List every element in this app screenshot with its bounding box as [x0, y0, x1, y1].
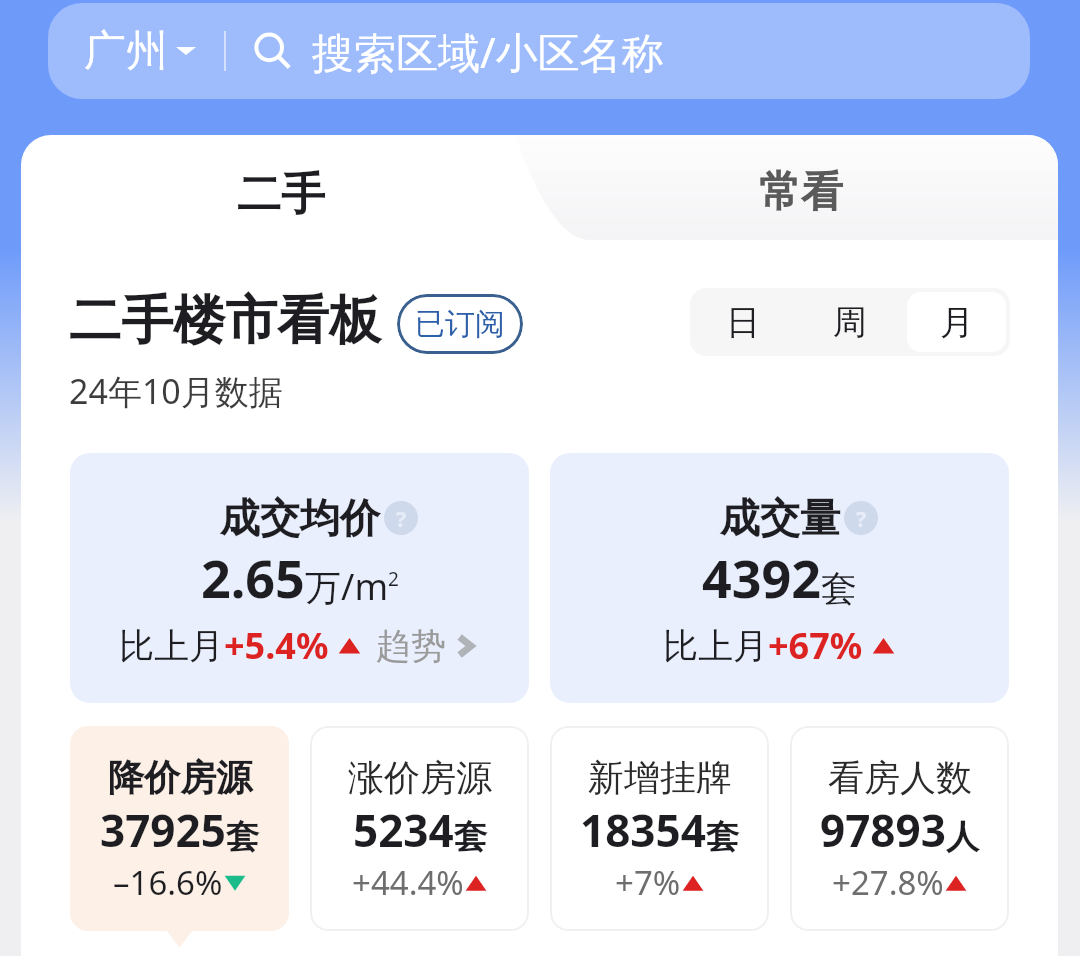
staticText: +7% [615, 860, 681, 905]
staticText: 18354 [580, 800, 706, 860]
button[interactable]: 说明 [844, 501, 878, 535]
staticText: 比上月 [663, 624, 768, 668]
staticText: 已订阅 [415, 305, 505, 343]
staticText: –16.6% [113, 860, 223, 905]
button[interactable]: 周 [800, 292, 899, 352]
staticText: 趋势 [376, 624, 446, 668]
staticText: +44.4% [352, 860, 464, 905]
staticText: 套 [226, 816, 259, 858]
staticText: 套 [821, 566, 857, 611]
staticText: 97893 [820, 800, 946, 860]
staticText: +67% [768, 621, 863, 670]
button[interactable]: 广州 [48, 3, 1030, 99]
staticText: 广州 [84, 25, 168, 78]
staticText: 比上月 [119, 624, 224, 668]
staticText: 4392 [702, 542, 821, 613]
staticText: 搜索区域/小区名称 [312, 23, 664, 80]
staticText: 月 [940, 301, 974, 344]
staticText: 万/m2 [305, 562, 399, 611]
staticText: 人 [946, 816, 979, 858]
staticText: +27.8% [832, 860, 944, 905]
staticText: 降价房源 [108, 755, 252, 800]
staticText: 二手 [237, 167, 325, 222]
button[interactable]: 新增挂牌 [550, 726, 769, 931]
button[interactable]: 已订阅 [415, 305, 505, 343]
button[interactable]: 说明 [384, 501, 418, 535]
staticText: 套 [706, 816, 739, 858]
staticText: +5.4% [224, 621, 329, 670]
staticText: 37925 [100, 800, 226, 860]
staticText: 看房人数 [828, 755, 972, 800]
button[interactable]: 成交量 [550, 453, 1009, 703]
button[interactable]: 看房人数 [790, 726, 1009, 931]
staticText: 常看 [759, 166, 843, 219]
staticText: 2.65 [201, 542, 305, 613]
staticText: ? [856, 504, 867, 533]
staticText: 成交量 [720, 493, 840, 543]
button[interactable] [21, 135, 513, 240]
staticText: 新增挂牌 [588, 755, 732, 800]
staticText: 成交均价 [220, 493, 380, 543]
staticText: 周 [833, 301, 867, 344]
button[interactable]: 月 [907, 292, 1006, 352]
button[interactable] [558, 135, 1058, 240]
staticText: 套 [454, 816, 487, 858]
other: 趋势 [450, 631, 480, 661]
staticText: 二手楼市看板 [69, 288, 381, 354]
button[interactable]: 涨价房源 [310, 726, 529, 931]
button[interactable]: 降价房源 [70, 726, 289, 931]
staticText: 5234 [353, 800, 454, 860]
button[interactable]: 日 [694, 292, 792, 352]
staticText: ? [396, 504, 407, 533]
staticText: 24年10月数据 [69, 368, 283, 414]
staticText: 日 [726, 301, 760, 344]
staticText: 涨价房源 [348, 755, 492, 800]
button[interactable]: 成交均价 [70, 453, 529, 703]
